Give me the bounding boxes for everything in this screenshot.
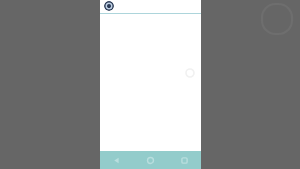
- button[interactable]: Recent apps: [167, 151, 201, 169]
- button[interactable]: Home: [133, 151, 167, 169]
- button[interactable]: App menu: [104, 1, 114, 11]
- button[interactable]: Back: [100, 151, 133, 169]
